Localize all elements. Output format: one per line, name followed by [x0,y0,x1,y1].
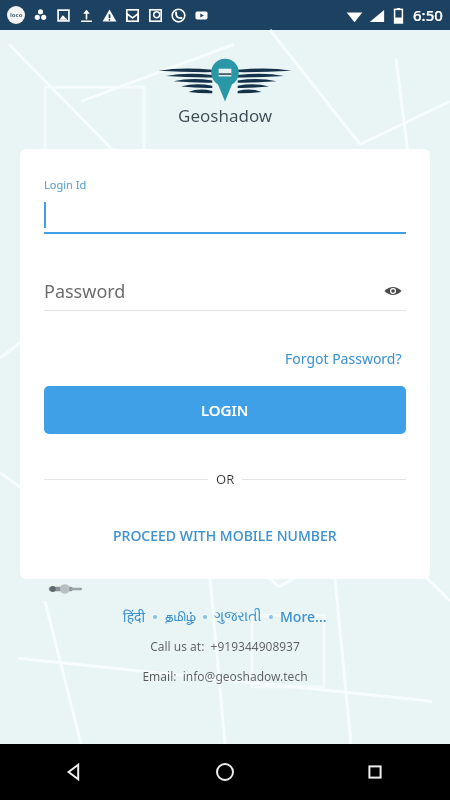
staticText: loco [10,11,23,19]
staticText: OR [216,470,235,488]
staticText: LOGIN [201,400,249,420]
button[interactable]: More... [278,607,329,626]
button[interactable]: Forgot Password? [281,345,406,372]
button[interactable]: ગુજરાતી [212,610,264,624]
button[interactable] [44,202,406,232]
button[interactable]: தமிழ் [162,610,198,624]
staticText: Call us at: +919344908937 [0,638,450,654]
staticText: Geoshadow [178,104,273,127]
staticText: PROCEED WITH MOBILE NUMBER [113,526,337,545]
staticText: Password [44,279,126,304]
staticText: தமிழ் [164,610,196,624]
button[interactable]: हिंदी [121,607,148,626]
staticText: Forgot Password? [285,349,402,368]
button[interactable]: Back [0,744,150,800]
button[interactable]: LOGIN [44,386,406,434]
button[interactable]: Home [150,744,300,800]
button[interactable]: Recent apps [300,744,450,800]
staticText: ગુજરાતી [214,610,262,624]
staticText: 6:50 [413,5,443,25]
staticText: हिंदी [123,607,146,626]
button[interactable]: PROCEED WITH MOBILE NUMBER [44,526,406,545]
button[interactable]: Show password [380,278,406,304]
button[interactable]: Password [44,276,406,306]
staticText: More... [280,607,327,626]
staticText: Login Id [44,177,87,192]
staticText: Email: info@geoshadow.tech [0,668,450,684]
